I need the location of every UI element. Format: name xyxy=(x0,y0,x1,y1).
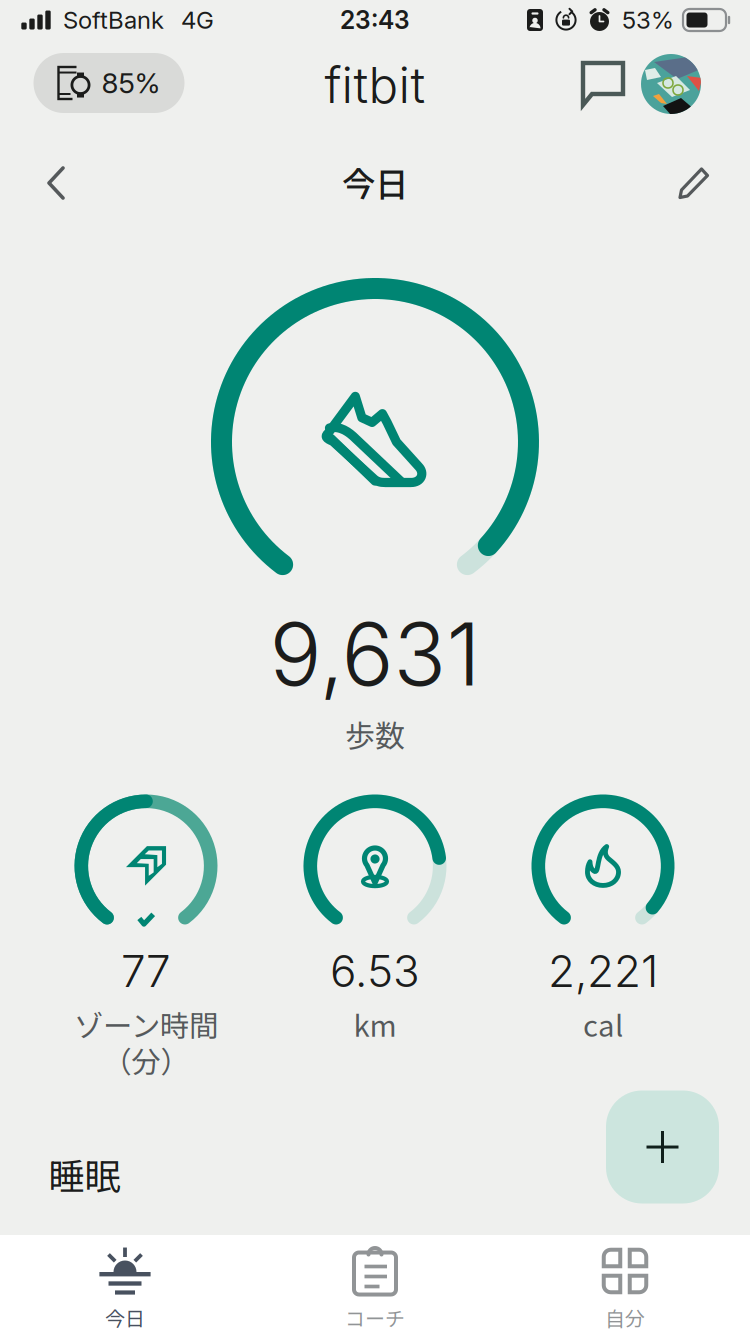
staticText: km xyxy=(353,1003,396,1045)
staticText: 4G xyxy=(181,5,214,34)
staticText: cal xyxy=(583,1003,623,1045)
button[interactable]: Messages xyxy=(580,60,626,108)
staticText: fitbit xyxy=(324,55,425,115)
button[interactable]: 今日 xyxy=(0,1235,250,1334)
staticText: 77 xyxy=(121,944,171,998)
staticText: 9,631 xyxy=(269,602,480,706)
staticText: 睡眠 xyxy=(48,1148,120,1200)
staticText: 歩数 xyxy=(345,712,405,756)
staticText: （分） xyxy=(102,1039,189,1081)
staticText: 今日 xyxy=(342,158,408,206)
staticText: 今日 xyxy=(105,1303,145,1332)
staticText: 2,221 xyxy=(548,944,658,998)
staticText: 自分 xyxy=(605,1303,645,1332)
staticText: コーチ xyxy=(345,1303,405,1332)
button[interactable]: Device battery 85 percent xyxy=(33,53,184,113)
button[interactable]: コーチ xyxy=(250,1235,500,1334)
staticText: 6.53 xyxy=(330,944,420,998)
button[interactable]: Add xyxy=(606,1090,719,1203)
staticText: SoftBank xyxy=(63,5,164,34)
button[interactable]: Profile xyxy=(641,54,701,114)
staticText: ゾーン時間 xyxy=(74,1003,218,1045)
button[interactable]: 自分 xyxy=(500,1235,750,1334)
button[interactable]: Edit xyxy=(661,151,727,215)
staticText: 53% xyxy=(622,5,674,34)
button[interactable]: Back xyxy=(27,150,85,216)
staticText: 23:43 xyxy=(340,5,410,35)
staticText: 85% xyxy=(101,66,160,100)
